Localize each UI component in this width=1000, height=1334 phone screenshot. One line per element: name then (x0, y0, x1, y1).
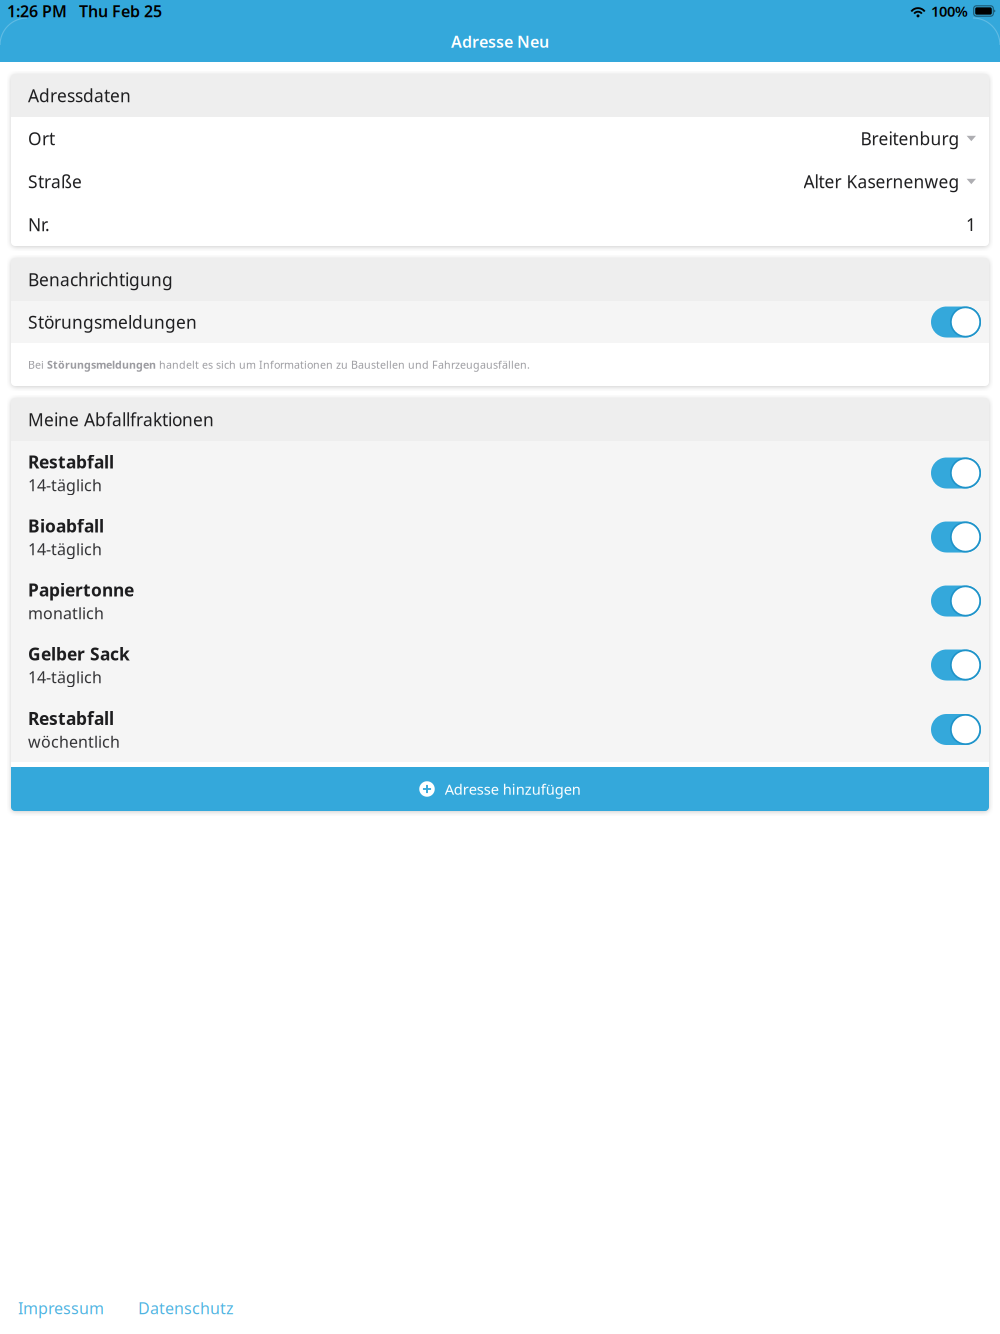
button[interactable]: Gelber Sack (11, 633, 989, 697)
staticText: 14-täglich (28, 538, 102, 560)
staticText: Alter Kasernenweg (804, 170, 960, 193)
staticText: Benachrichtigung (28, 268, 173, 291)
staticText: Adresse hinzufügen (445, 779, 581, 799)
button[interactable]: Datenschutz (138, 1297, 234, 1319)
button[interactable]: Nr. (11, 203, 989, 246)
staticText: Gelber Sack (28, 642, 130, 665)
staticText: 1:26 PM (7, 0, 67, 22)
staticText: Bei (28, 357, 47, 372)
staticText: Thu Feb 25 (79, 0, 162, 22)
button[interactable]: Impressum (18, 1297, 104, 1319)
staticText: Nr. (28, 213, 50, 236)
staticText: Bioabfall (28, 514, 104, 537)
staticText: monatlich (28, 602, 104, 624)
staticText: Adressdaten (28, 84, 131, 107)
button[interactable]: Störungsmeldungen (11, 301, 989, 343)
staticText: 100% (931, 1, 968, 21)
staticText: Impressum (18, 1297, 104, 1319)
staticText: Breitenburg (861, 127, 960, 150)
staticText: 1 (966, 213, 976, 236)
staticText: Meine Abfallfraktionen (28, 408, 214, 431)
staticText: Straße (28, 170, 82, 193)
staticText: Papiertonne (28, 578, 134, 601)
staticText: Störungsmeldungen (47, 357, 156, 372)
staticText: wöchentlich (28, 731, 120, 752)
staticText: Datenschutz (138, 1297, 234, 1319)
button[interactable]: Restabfall (11, 697, 989, 762)
staticText: Ort (28, 127, 55, 150)
staticText: Adresse Neu (451, 31, 549, 52)
button[interactable]: Bioabfall (11, 505, 989, 569)
button[interactable]: Straße (11, 160, 989, 203)
staticText: 14-täglich (28, 666, 102, 688)
button[interactable]: Restabfall (11, 441, 989, 505)
staticText: 14-täglich (28, 474, 102, 496)
staticText: Störungsmeldungen (28, 310, 197, 333)
staticText: Restabfall (28, 450, 114, 473)
button[interactable]: Adresse hinzufügen (11, 767, 989, 811)
staticText: Restabfall (28, 707, 114, 730)
staticText: handelt es sich um Informationen zu Baus… (156, 357, 530, 372)
button[interactable]: Papiertonne (11, 569, 989, 633)
button[interactable]: Ort (11, 117, 989, 160)
